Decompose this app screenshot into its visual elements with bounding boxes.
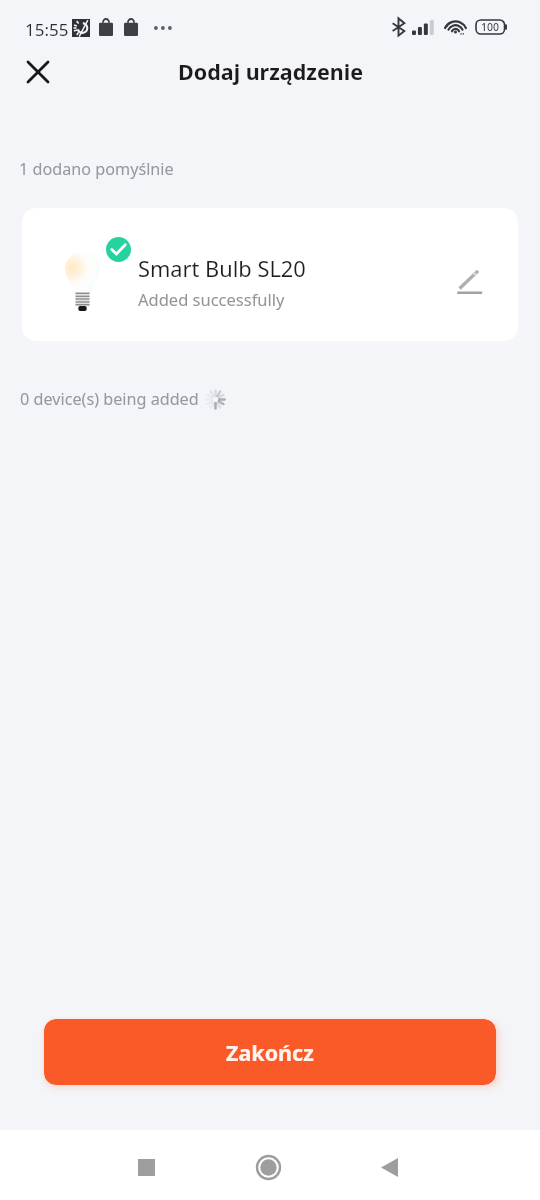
- button[interactable]: Recent apps: [117, 1138, 175, 1196]
- staticText: 0 device(s) being added: [20, 388, 199, 410]
- button[interactable]: Edit name: [448, 259, 492, 303]
- staticText: Added successfully: [138, 288, 285, 310]
- button[interactable]: Smart Bulb SL20: [22, 208, 518, 341]
- staticText: Dodaj urządzenie: [178, 57, 363, 86]
- staticText: 1 dodano pomyślnie: [19, 158, 174, 180]
- button[interactable]: Zakończ: [44, 1019, 496, 1085]
- staticText: Zakończ: [226, 1038, 314, 1067]
- button[interactable]: Home: [239, 1138, 297, 1196]
- button[interactable]: Back: [360, 1138, 418, 1196]
- staticText: 100: [481, 20, 500, 34]
- staticText: Smart Bulb SL20: [138, 254, 306, 284]
- button[interactable]: Close: [20, 54, 56, 90]
- staticText: 15:55: [25, 18, 69, 41]
